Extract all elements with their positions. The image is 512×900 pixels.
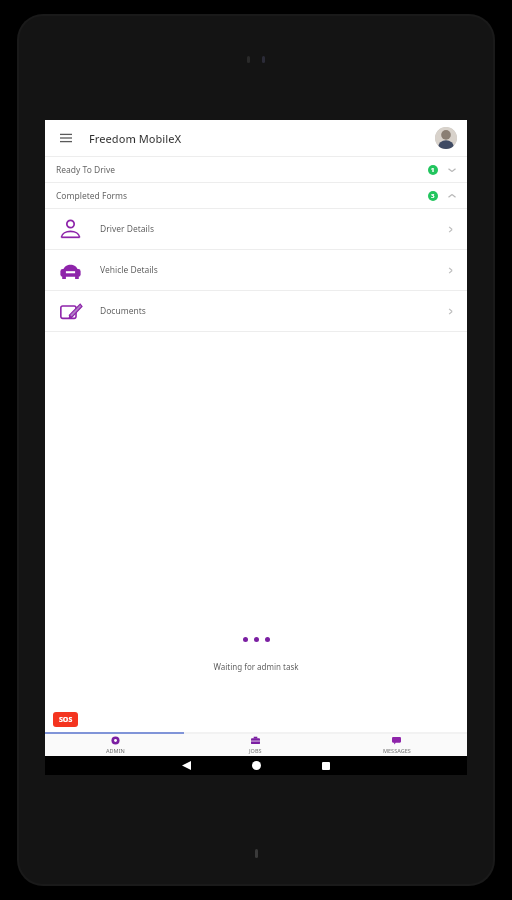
staticText: Waiting for admin task [213,661,299,672]
button[interactable]: Ready To Drive [45,157,467,182]
button[interactable]: MESSAGES [326,734,467,756]
button[interactable]: Documents [45,291,467,331]
staticText: 3 [431,192,435,200]
staticText: ADMIN [106,747,125,754]
staticText: MESSAGES [383,747,411,754]
button[interactable]: Vehicle Details [45,250,467,290]
button[interactable]: SOS [53,712,78,727]
button[interactable]: Profile [435,127,457,149]
button[interactable]: Back [151,761,221,770]
staticText: SOS [59,715,73,725]
button[interactable]: Open navigation menu [55,127,77,149]
button[interactable]: Driver Details [45,209,467,249]
staticText: Completed Forms [56,190,128,202]
staticText: Freedom MobileX [89,131,182,146]
staticText: 1 [431,166,435,174]
staticText: Driver Details [100,223,155,235]
staticText: Documents [100,305,146,317]
staticText: Ready To Drive [56,164,116,176]
button[interactable]: ADMIN [45,734,185,756]
button[interactable]: Home [221,761,291,770]
button[interactable]: Recent apps [291,762,361,770]
button[interactable]: Completed Forms [45,183,467,208]
button[interactable]: JOBS [185,734,326,756]
staticText: Vehicle Details [100,264,158,276]
staticText: JOBS [249,747,262,754]
